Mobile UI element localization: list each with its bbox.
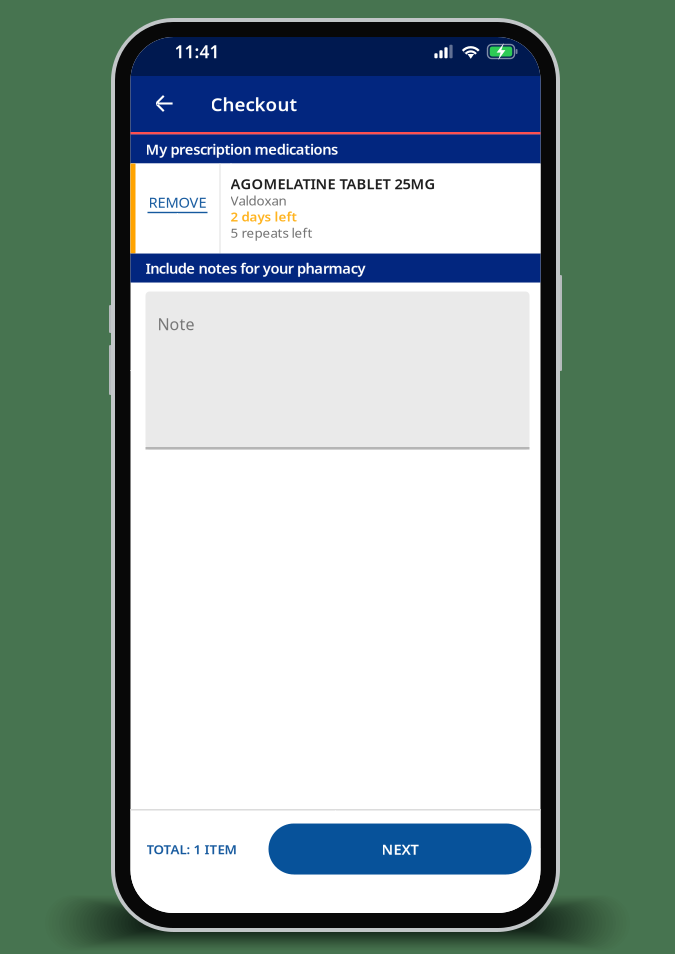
staticText: 2 days left (230, 207, 296, 225)
button[interactable]: TOTAL: 1 ITEM (130, 823, 268, 874)
button[interactable]: Note (145, 291, 529, 449)
staticText: AGOMELATINE TABLET 25MG (230, 174, 435, 193)
button[interactable]: Back (130, 76, 198, 132)
staticText: NEXT (381, 839, 418, 859)
staticText: REMOVE (148, 192, 206, 212)
staticText: TOTAL: 1 ITEM (146, 840, 236, 858)
staticText: 11:41 (174, 40, 219, 63)
staticText: 5 repeats left (230, 224, 312, 241)
button[interactable]: NEXT (268, 823, 531, 874)
staticText: Valdoxan (230, 191, 286, 209)
staticText: Include notes for your pharmacy (145, 258, 365, 278)
staticText: Checkout (210, 92, 297, 116)
staticText: Note (157, 313, 194, 335)
staticText: My prescription medications (145, 139, 338, 159)
button[interactable]: REMOVE (135, 163, 219, 253)
